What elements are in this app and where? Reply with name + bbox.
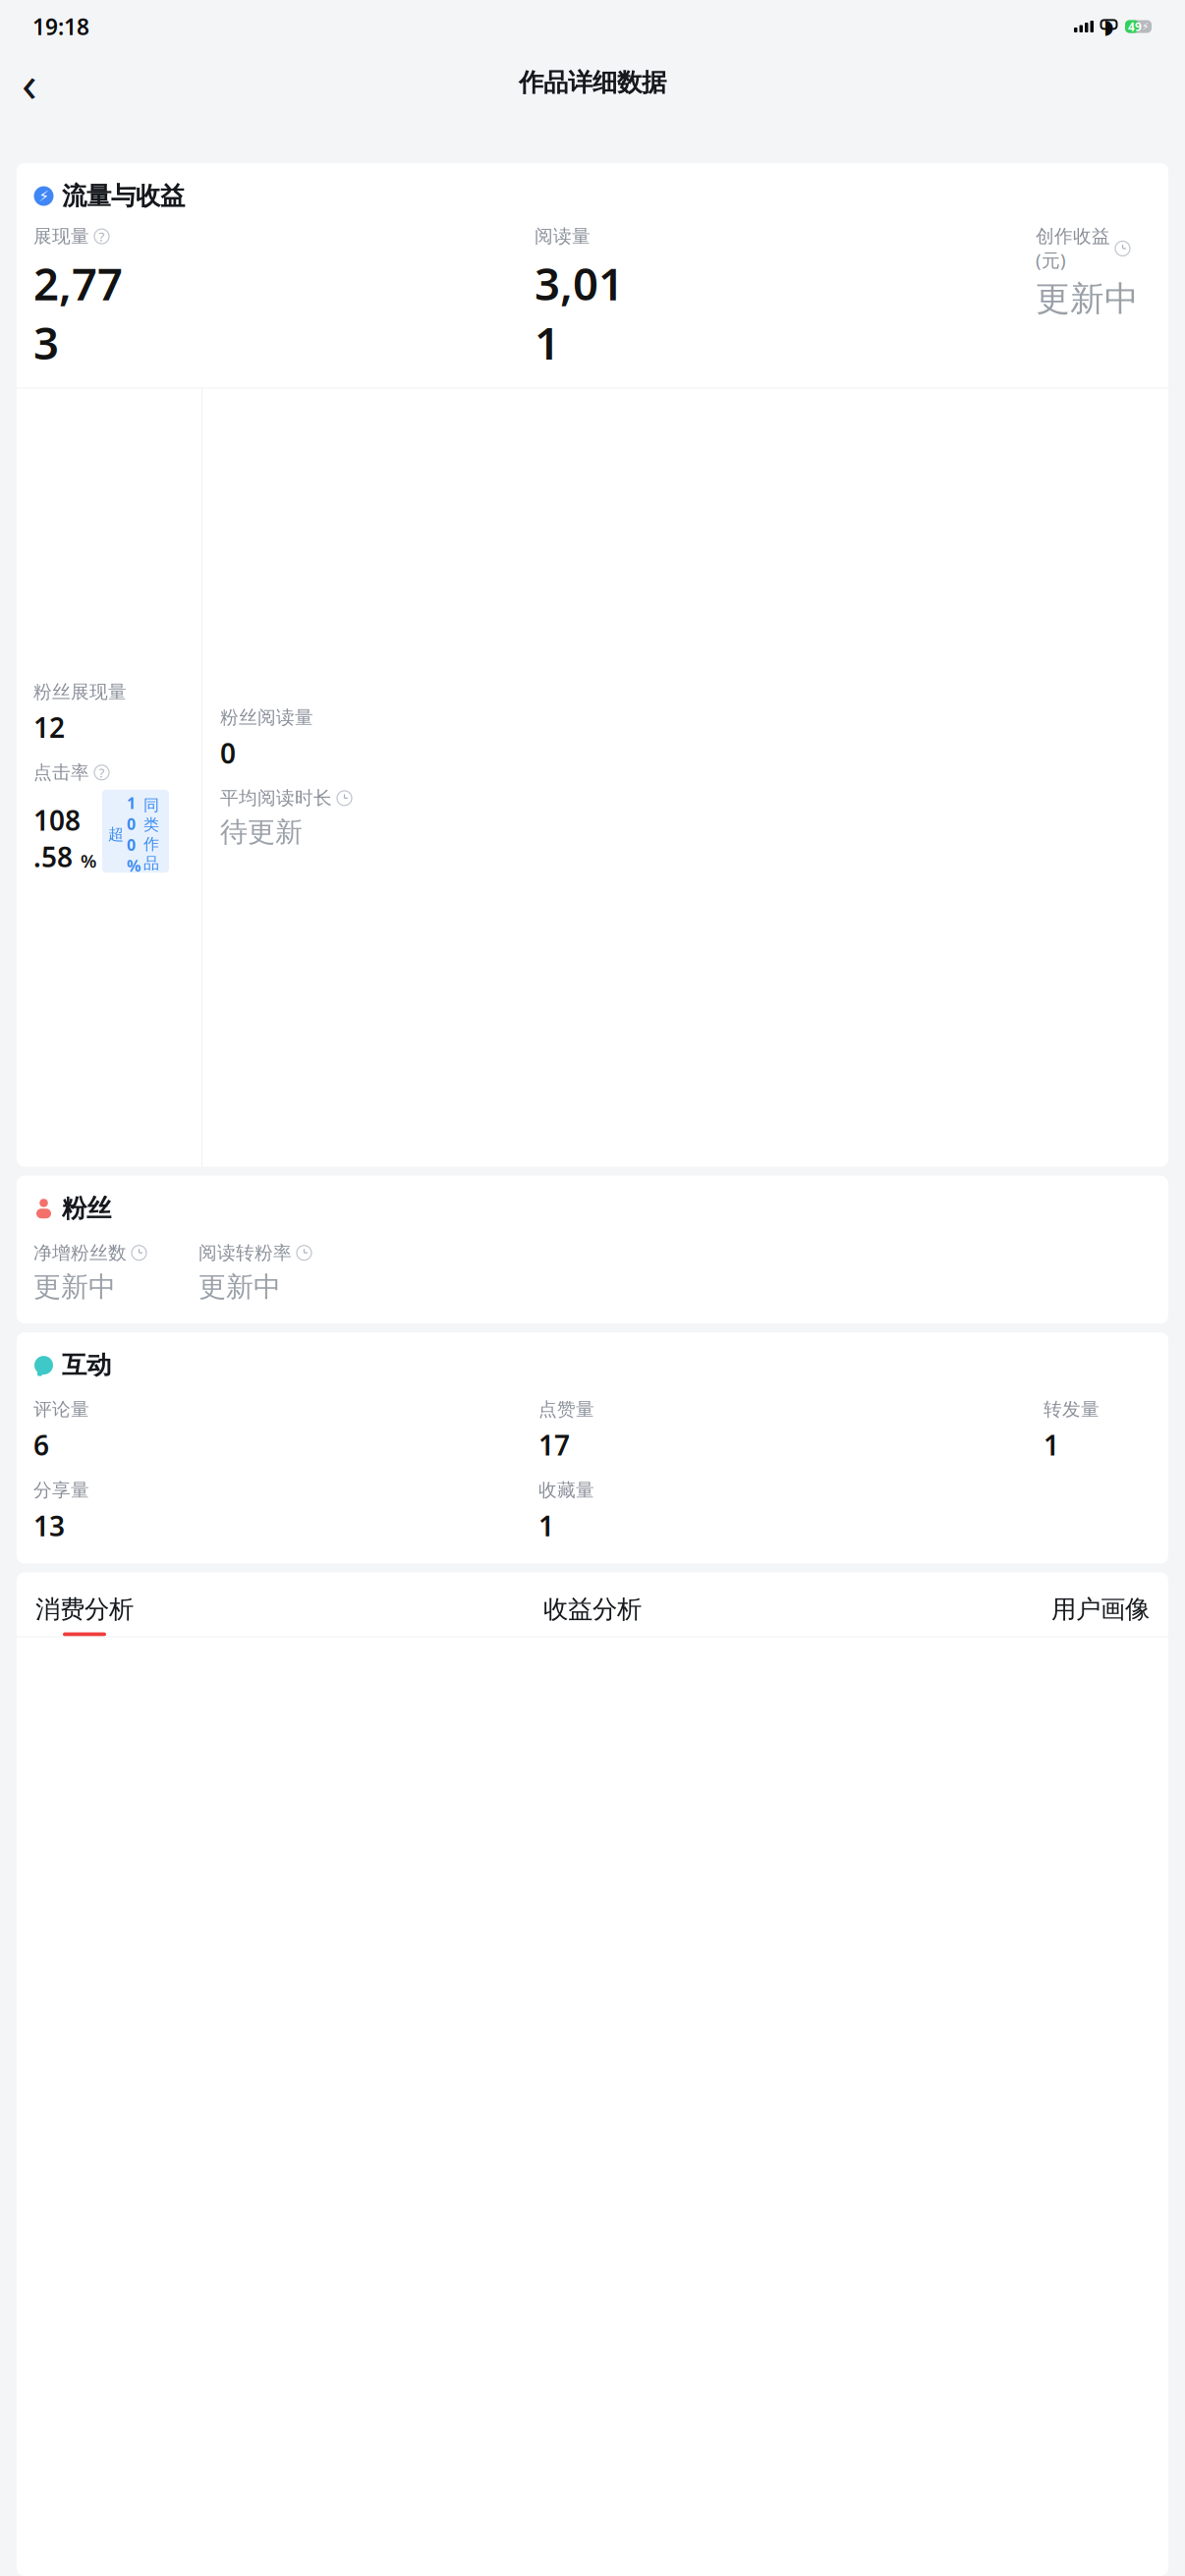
button[interactable]: 消费分析 (30, 1572, 139, 1636)
staticText: 49 (1128, 19, 1142, 34)
staticText: 6 (33, 1427, 49, 1463)
staticText: ? (99, 764, 105, 781)
staticText: 待更新 (220, 815, 303, 849)
button[interactable]: 收益分析 (538, 1572, 647, 1636)
staticText: 分享量 (33, 1479, 89, 1501)
staticText: 粉丝 (62, 1193, 111, 1224)
staticText: ⚡︎ (1142, 21, 1149, 32)
staticText: 作品详细数据 (519, 67, 666, 98)
staticText: 更新中 (33, 1270, 116, 1304)
staticText: 17 (538, 1427, 570, 1463)
staticText: 平均阅读时长 (220, 787, 332, 809)
staticText: ◗ (1103, 15, 1114, 38)
staticText: 用户画像 (1051, 1594, 1150, 1624)
staticText: 评论量 (33, 1398, 89, 1421)
staticText: 0 (220, 735, 236, 771)
staticText: 12 (33, 709, 65, 745)
staticText: 收益分析 (543, 1594, 642, 1624)
staticText: ⚡︎ (39, 188, 49, 204)
staticText: 流量与收益 (62, 181, 185, 211)
staticText: 消费分析 (35, 1594, 134, 1624)
button[interactable]: 用户画像 (1046, 1572, 1155, 1636)
staticText: 108.58 (33, 802, 81, 875)
staticText: 更新中 (1036, 278, 1139, 320)
button[interactable]: Back (8, 61, 51, 104)
staticText: 1 (1044, 1427, 1059, 1463)
staticText: 更新中 (198, 1270, 281, 1304)
staticText: 同类作品 (143, 796, 159, 873)
staticText: 转发量 (1044, 1398, 1100, 1421)
staticText: 19:18 (32, 12, 89, 41)
staticText: 粉丝展现量 (33, 681, 127, 703)
staticText: ‹ (22, 50, 37, 116)
staticText: % (81, 848, 96, 873)
staticText: 100% (127, 793, 141, 876)
staticText: 阅读量 (535, 225, 591, 248)
staticText: 阅读转粉率 (198, 1242, 292, 1264)
staticText: 互动 (62, 1350, 111, 1380)
staticText: 收藏量 (538, 1479, 594, 1501)
staticText: 展现量 (33, 225, 89, 248)
staticText: 1 (538, 1507, 554, 1544)
staticText: 点击率 (33, 761, 89, 784)
staticText: 3,011 (535, 253, 624, 372)
staticText: ? (99, 228, 105, 245)
staticText: 13 (33, 1507, 65, 1544)
staticText: 粉丝阅读量 (220, 706, 313, 729)
staticText: 超 (108, 825, 124, 844)
staticText: 创作收益(元) (1036, 225, 1110, 272)
staticText: 点赞量 (538, 1398, 594, 1421)
staticText: 净增粉丝数 (33, 1242, 127, 1264)
staticText: 2,773 (33, 253, 123, 372)
